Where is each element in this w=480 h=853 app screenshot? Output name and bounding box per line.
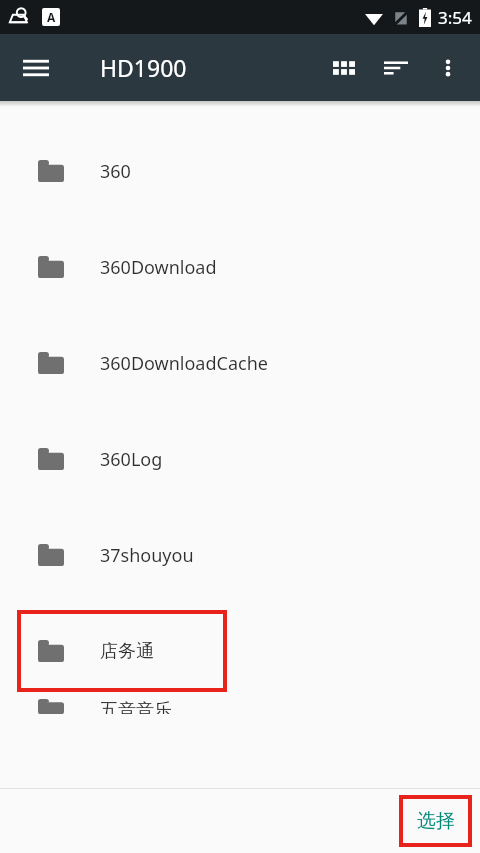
button[interactable]: 183 bbox=[0, 101, 480, 123]
button[interactable]: Grid view bbox=[318, 42, 370, 94]
button[interactable]: 360Log bbox=[0, 411, 480, 507]
button[interactable]: 五音音乐 bbox=[0, 699, 480, 714]
staticText: A bbox=[47, 9, 56, 25]
staticText: 360Download bbox=[100, 255, 217, 280]
staticText: 五音音乐 bbox=[100, 699, 172, 714]
staticText: 360DownloadCache bbox=[100, 351, 268, 376]
button[interactable]: More options bbox=[422, 42, 474, 94]
button[interactable]: 选择 bbox=[401, 797, 470, 845]
button[interactable]: Open navigation drawer bbox=[10, 42, 62, 94]
staticText: 选择 bbox=[417, 809, 455, 833]
staticText: 37shouyou bbox=[100, 543, 194, 568]
staticText: 3:54 bbox=[438, 6, 472, 29]
staticText: HD1900 bbox=[100, 52, 187, 83]
staticText: 店务通 bbox=[100, 640, 154, 663]
button[interactable]: 37shouyou bbox=[0, 507, 480, 603]
staticText: 360Log bbox=[100, 447, 163, 472]
staticText: 360 bbox=[100, 159, 131, 184]
button[interactable]: Sort bbox=[370, 42, 422, 94]
button[interactable]: 360Download bbox=[0, 219, 480, 315]
button[interactable]: 360DownloadCache bbox=[0, 315, 480, 411]
button[interactable]: 店务通 bbox=[0, 603, 480, 699]
button[interactable]: 360 bbox=[0, 123, 480, 219]
